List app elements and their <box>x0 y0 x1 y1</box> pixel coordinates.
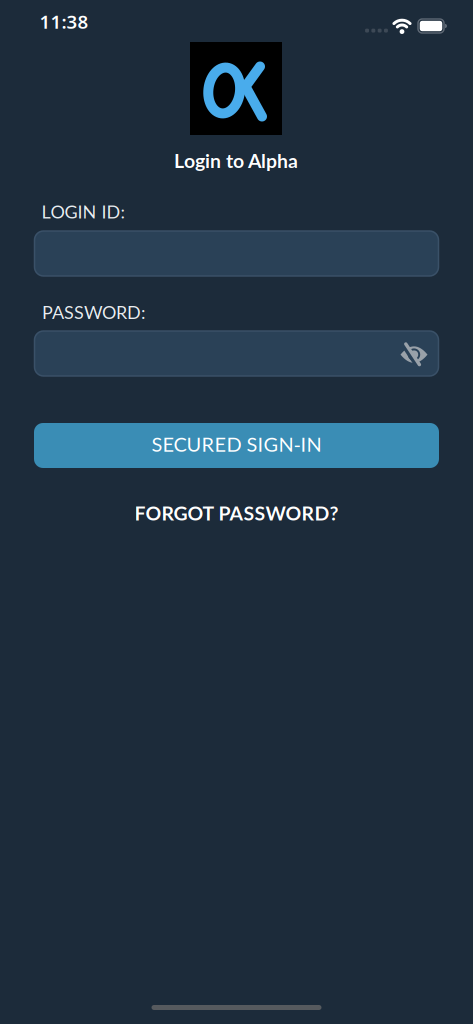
staticText: PASSWORD: <box>42 301 146 323</box>
button[interactable]: FORGOT PASSWORD? <box>134 501 338 525</box>
button[interactable]: SECURED SIGN-IN <box>34 423 439 468</box>
staticText: 11:38 <box>39 9 88 34</box>
staticText: LOGIN ID: <box>41 201 125 222</box>
staticText: SECURED SIGN-IN <box>151 432 321 456</box>
button[interactable] <box>34 331 438 376</box>
staticText: Login to Alpha <box>174 149 298 172</box>
button[interactable] <box>400 343 428 367</box>
staticText: FORGOT PASSWORD? <box>134 501 338 525</box>
